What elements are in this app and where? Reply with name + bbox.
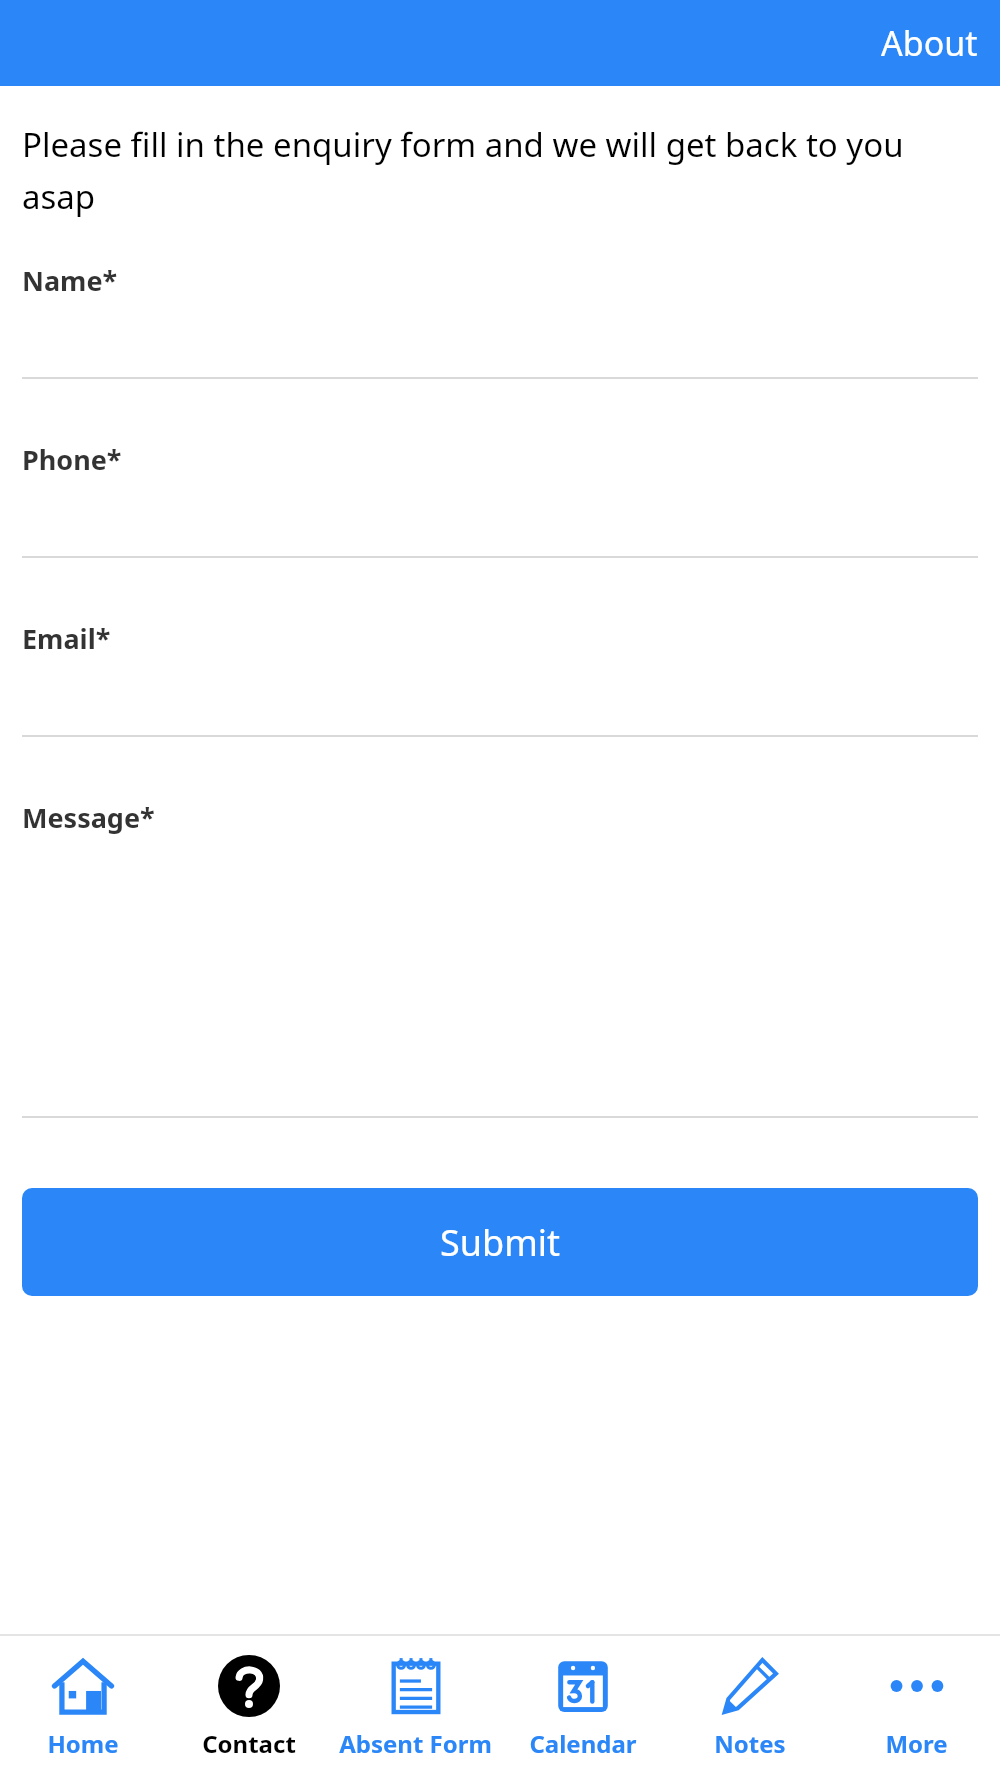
other: Home	[52, 1655, 114, 1717]
button[interactable]: About	[859, 12, 1000, 74]
staticText: Message*	[22, 799, 155, 836]
other: Calendar	[552, 1655, 614, 1717]
staticText: Email*	[22, 620, 111, 657]
button[interactable]: Contact	[166, 1636, 332, 1778]
staticText: Notes	[714, 1727, 786, 1760]
staticText: Submit	[440, 1218, 561, 1267]
button[interactable]: Submit	[22, 1188, 978, 1296]
other: Notes	[719, 1655, 781, 1717]
staticText: Phone*	[22, 441, 122, 478]
button[interactable]: More	[833, 1636, 1000, 1778]
staticText: Home	[47, 1727, 119, 1760]
button[interactable]: Absent Form	[332, 1636, 499, 1778]
button[interactable]: Notes	[666, 1636, 833, 1778]
button[interactable]: Home	[0, 1636, 166, 1778]
staticText: Name*	[22, 262, 118, 299]
staticText: More	[885, 1727, 948, 1760]
staticText: About	[881, 20, 978, 66]
other: More	[886, 1655, 948, 1717]
staticText: Please fill in the enquiry form and we w…	[22, 122, 978, 218]
staticText: Contact	[202, 1727, 296, 1760]
staticText: Calendar	[529, 1727, 637, 1760]
button[interactable]: Calendar	[499, 1636, 666, 1778]
staticText: Absent Form	[339, 1727, 492, 1760]
other: Absent Form	[385, 1655, 447, 1717]
other: Contact	[218, 1655, 280, 1717]
